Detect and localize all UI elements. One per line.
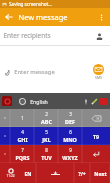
staticText: 4 bbox=[21, 129, 24, 135]
staticText: TUV bbox=[41, 154, 52, 161]
button[interactable]: EN bbox=[20, 163, 36, 183]
button[interactable]: Next bbox=[90, 163, 110, 183]
button[interactable]: Symbols bbox=[0, 127, 10, 145]
staticText: PQRS bbox=[15, 154, 30, 161]
button[interactable]: 6 bbox=[58, 127, 82, 145]
button[interactable]: Attach bbox=[0, 65, 14, 79]
button[interactable]: More options bbox=[92, 8, 110, 26]
staticText: 7 bbox=[21, 147, 24, 153]
button[interactable]: Voice input bbox=[81, 97, 90, 106]
staticText: Enter message bbox=[14, 68, 55, 76]
staticText: 3 bbox=[69, 111, 72, 117]
button[interactable]: ?/+ bbox=[74, 163, 90, 183]
button[interactable]: Add contact bbox=[91, 28, 107, 44]
button[interactable]: Back bbox=[0, 8, 18, 26]
button[interactable]: 3 bbox=[58, 109, 82, 127]
button[interactable]: Settings bbox=[18, 97, 26, 105]
staticText: New message bbox=[18, 12, 68, 22]
button[interactable]: Space bbox=[36, 163, 74, 183]
button[interactable]: Keyboard theme bbox=[2, 96, 12, 106]
staticText: JKL bbox=[42, 136, 51, 143]
staticText: T9 bbox=[93, 133, 99, 140]
button[interactable]: Handwriting bbox=[90, 97, 99, 106]
button[interactable]: enter bbox=[82, 145, 110, 163]
staticText: MNO bbox=[63, 136, 77, 143]
button[interactable]: 2 bbox=[34, 109, 58, 127]
button[interactable]: Keyboard settings bbox=[0, 163, 20, 183]
button[interactable]: 9 bbox=[58, 145, 82, 163]
button[interactable]: 7 bbox=[10, 145, 34, 163]
staticText: Saving screenshot... bbox=[9, 1, 52, 7]
button[interactable]: 1 bbox=[10, 109, 34, 127]
staticText: 5 bbox=[45, 129, 48, 135]
button[interactable]: Symbols bbox=[0, 145, 10, 163]
staticText: Next bbox=[94, 170, 107, 177]
button[interactable]: Symbols bbox=[0, 109, 10, 127]
staticText: GHI bbox=[17, 136, 28, 143]
button[interactable]: 8 bbox=[34, 145, 58, 163]
staticText: English bbox=[30, 98, 48, 105]
staticText: 11:22 bbox=[6, 174, 15, 178]
staticText: 2 bbox=[45, 111, 48, 117]
button[interactable]: Close keyboard bbox=[99, 97, 108, 106]
staticText: EN bbox=[24, 170, 32, 177]
button[interactable]: Send SMS bbox=[93, 64, 104, 75]
button[interactable]: T9 bbox=[82, 127, 110, 145]
button[interactable]: 5 bbox=[34, 127, 58, 145]
staticText: 8 bbox=[45, 147, 48, 153]
staticText: DEF bbox=[65, 118, 75, 125]
button[interactable]: 4 bbox=[10, 127, 34, 145]
staticText: WXYZ bbox=[62, 154, 78, 161]
staticText: ?/+ bbox=[78, 170, 86, 177]
staticText: Enter recipients bbox=[3, 31, 51, 40]
button[interactable]: back bbox=[82, 109, 110, 127]
staticText: 6 bbox=[69, 129, 72, 135]
staticText: ABC bbox=[41, 118, 52, 125]
staticText: 1 bbox=[21, 115, 24, 121]
staticText: 9 bbox=[69, 147, 72, 153]
staticText: SMS bbox=[95, 75, 102, 80]
